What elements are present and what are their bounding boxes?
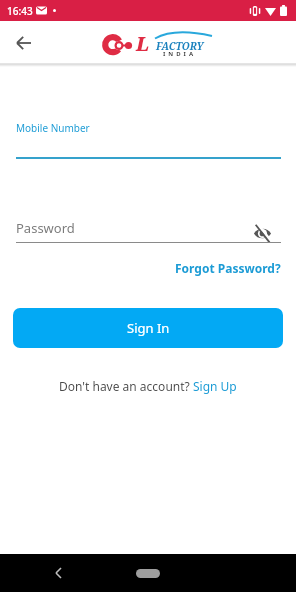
staticText: FACTORY bbox=[156, 39, 204, 53]
staticText: Mobile Number bbox=[16, 121, 90, 135]
staticText: 16:43 bbox=[7, 4, 33, 18]
staticText: Sign Up bbox=[193, 378, 237, 394]
button[interactable]: Forgot Password? bbox=[175, 260, 281, 276]
staticText: Forgot Password? bbox=[175, 260, 281, 276]
staticText: Sign In bbox=[127, 319, 170, 337]
staticText: L bbox=[136, 31, 149, 57]
button[interactable] bbox=[136, 569, 160, 578]
button[interactable]: Sign Up bbox=[193, 378, 237, 394]
button[interactable]: Sign In bbox=[13, 308, 283, 348]
button[interactable] bbox=[52, 566, 66, 580]
button[interactable] bbox=[14, 33, 34, 53]
staticText: Don't have an account? bbox=[59, 378, 193, 394]
staticText: INDIA bbox=[163, 50, 197, 58]
staticText: Password bbox=[16, 219, 75, 237]
